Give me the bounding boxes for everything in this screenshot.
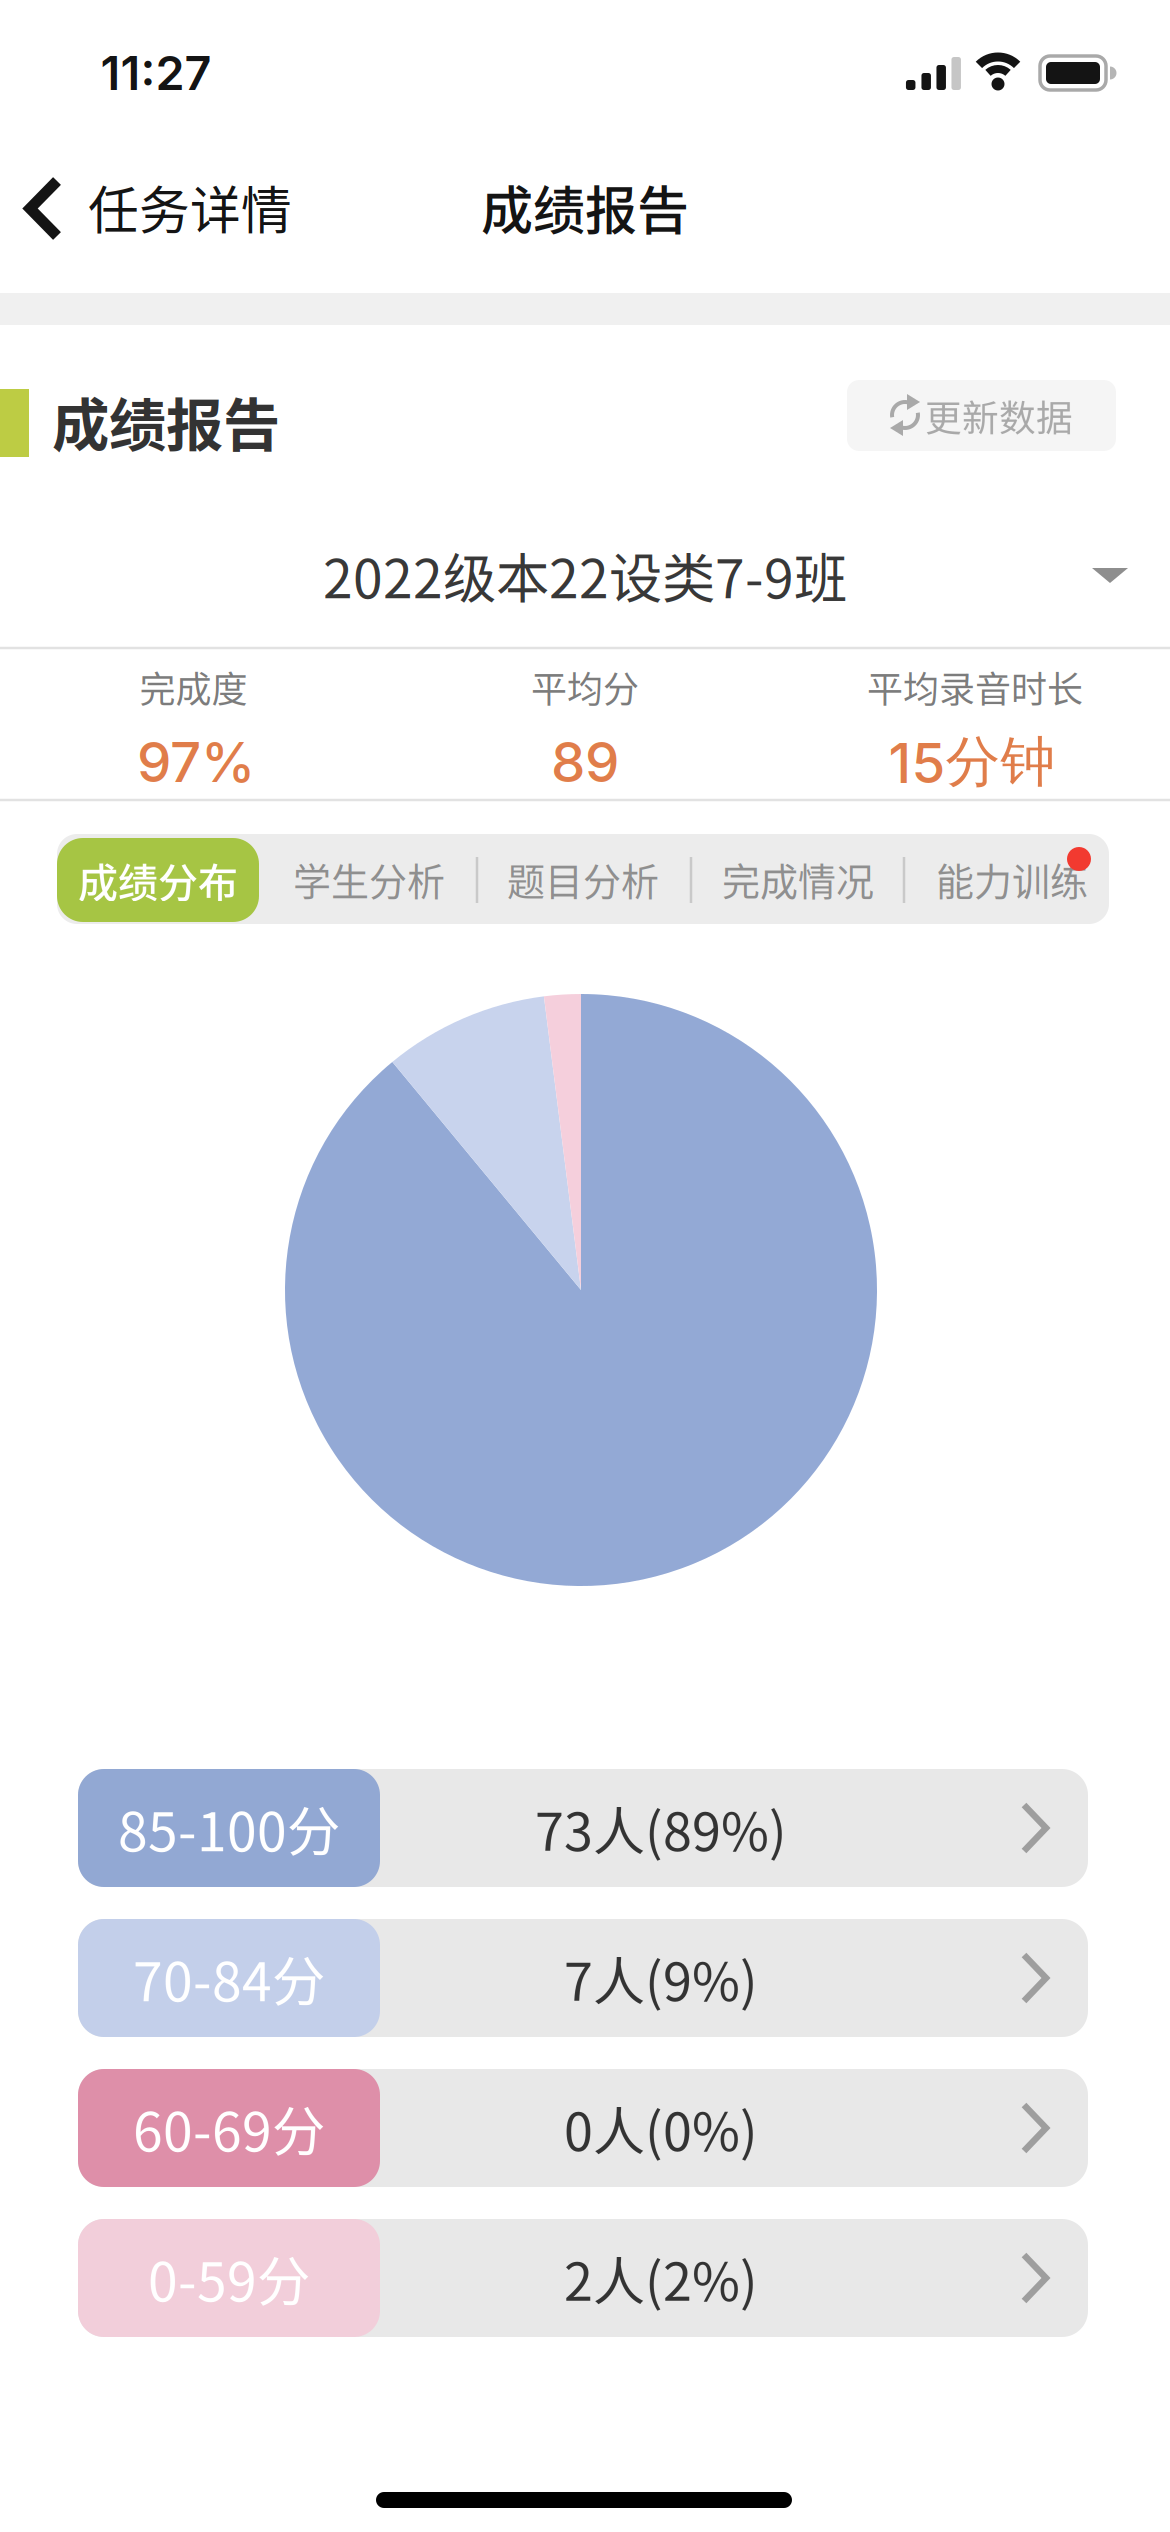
- staticText: 97%: [137, 729, 255, 795]
- button[interactable]: 成绩分布: [57, 838, 259, 922]
- staticText: 60-69分: [133, 2089, 325, 2167]
- staticText: 更新数据: [925, 389, 1073, 442]
- staticText: 题目分析: [507, 851, 659, 906]
- button[interactable]: 题目分析: [483, 834, 683, 924]
- button[interactable]: 85-100分: [78, 1769, 1088, 1887]
- button[interactable]: 0-59分: [78, 2219, 1088, 2337]
- staticText: 2人(2%): [564, 2240, 758, 2316]
- staticText: 平均分: [531, 661, 639, 713]
- staticText: 11:27: [100, 45, 211, 101]
- staticText: 73人(89%): [535, 1790, 787, 1866]
- staticText: 0-59分: [148, 2239, 310, 2317]
- staticText: 成绩报告: [52, 379, 280, 462]
- staticText: 完成度: [139, 661, 247, 713]
- staticText: 85-100分: [118, 1789, 340, 1867]
- button[interactable]: 更新数据: [847, 380, 1116, 451]
- staticText: 能力训练: [936, 851, 1088, 906]
- button[interactable]: 70-84分: [78, 1919, 1088, 2037]
- staticText: 学生分析: [293, 851, 445, 906]
- button[interactable]: 返回任务详情: [16, 176, 316, 240]
- staticText: 任务详情: [88, 170, 292, 244]
- staticText: 成绩分布: [78, 851, 238, 909]
- staticText: 成绩报告: [481, 169, 689, 245]
- staticText: 完成情况: [722, 851, 874, 906]
- staticText: 70-84分: [133, 1939, 325, 2017]
- button[interactable]: 完成情况: [698, 834, 898, 924]
- button[interactable]: 选择班级: [0, 530, 1170, 620]
- button[interactable]: 学生分析: [269, 834, 469, 924]
- staticText: 平均录音时长: [867, 661, 1083, 713]
- button[interactable]: 能力训练: [912, 834, 1112, 924]
- staticText: 2022级本22设类7-9班: [323, 536, 847, 614]
- staticText: 15分钟: [888, 728, 1055, 796]
- button[interactable]: 60-69分: [78, 2069, 1088, 2187]
- staticText: 7人(9%): [564, 1940, 758, 2016]
- staticText: 89: [551, 729, 619, 795]
- staticText: 0人(0%): [564, 2090, 758, 2166]
